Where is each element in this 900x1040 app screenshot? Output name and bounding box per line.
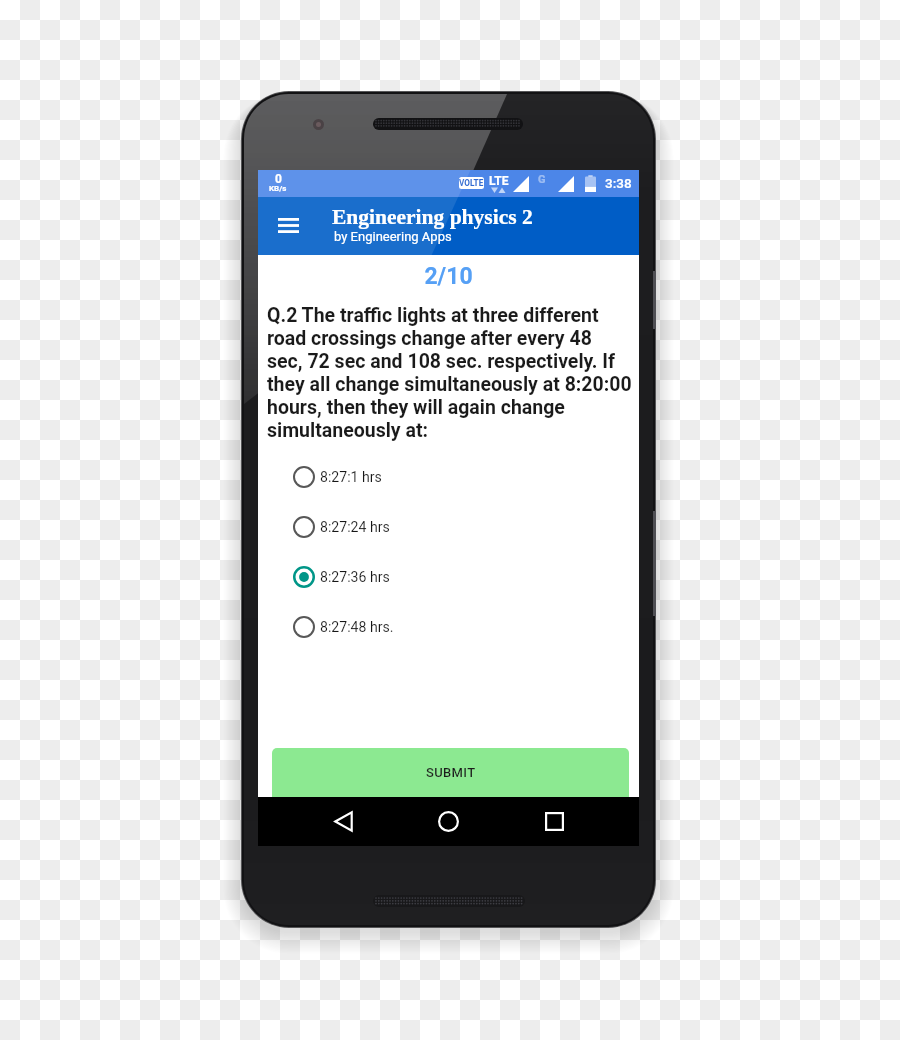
staticText: 3:38 bbox=[605, 175, 632, 191]
staticText: Engineering physics 2 bbox=[332, 205, 533, 229]
staticText: 0 bbox=[275, 172, 282, 186]
button[interactable]: 8:27:1 hrs bbox=[258, 452, 639, 502]
button[interactable]: Recent apps bbox=[530, 797, 578, 845]
button[interactable]: 8:27:36 hrs bbox=[258, 552, 639, 602]
staticText: 8:27:36 hrs bbox=[320, 569, 390, 586]
staticText: 8:27:24 hrs bbox=[320, 519, 390, 536]
button[interactable]: Back bbox=[319, 797, 367, 845]
staticText: by Engineering Apps bbox=[334, 229, 452, 244]
staticText: G bbox=[538, 173, 546, 186]
button[interactable]: SUBMIT bbox=[272, 748, 629, 810]
button[interactable]: 8:27:48 hrs. bbox=[258, 602, 639, 652]
button[interactable]: Open navigation menu bbox=[265, 203, 311, 249]
staticText: 8:27:48 hrs. bbox=[320, 619, 394, 636]
staticText: LTE bbox=[489, 174, 509, 188]
staticText: Q.2 The traffic lights at three differen… bbox=[267, 304, 632, 442]
staticText: SUBMIT bbox=[426, 765, 476, 780]
staticText: 2/10 bbox=[258, 263, 639, 290]
staticText: 8:27:1 hrs bbox=[320, 469, 382, 486]
staticText: VOLTE bbox=[459, 178, 484, 188]
staticText: KB/s bbox=[269, 184, 287, 193]
button[interactable]: 8:27:24 hrs bbox=[258, 502, 639, 552]
button[interactable]: Home bbox=[424, 797, 472, 845]
